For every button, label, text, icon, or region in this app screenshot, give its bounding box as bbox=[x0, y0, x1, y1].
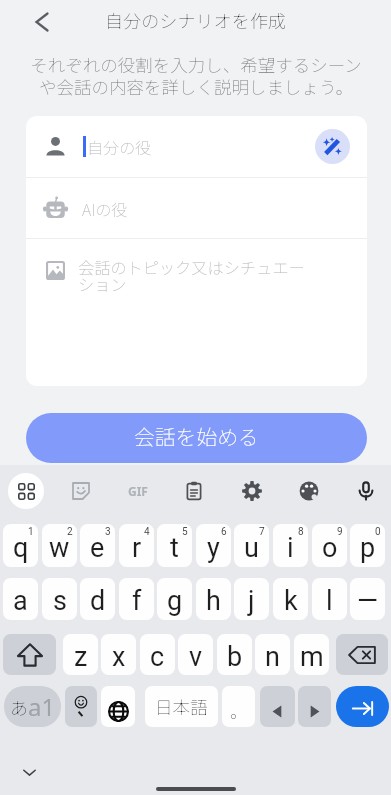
staticText: 日本語 bbox=[155, 694, 208, 719]
button[interactable]: y bbox=[196, 524, 231, 567]
staticText: 0 bbox=[375, 526, 381, 538]
staticText: t bbox=[170, 532, 179, 564]
button[interactable]: Shift bbox=[3, 634, 56, 675]
button[interactable]: t bbox=[157, 524, 192, 567]
staticText: s bbox=[53, 585, 67, 617]
button[interactable]: 会話のトピック又はシチュエーション bbox=[26, 239, 367, 386]
button[interactable]: p bbox=[350, 524, 385, 567]
button[interactable]: x bbox=[101, 634, 136, 675]
staticText: 6 bbox=[221, 526, 227, 538]
button[interactable]: b bbox=[217, 634, 252, 675]
staticText: 会話を始める bbox=[134, 421, 259, 451]
staticText: g bbox=[167, 585, 183, 617]
staticText: k bbox=[284, 585, 298, 617]
button[interactable]: Themes bbox=[291, 473, 327, 509]
button[interactable]: z bbox=[63, 634, 98, 675]
staticText: 会話のトピック又はシチュエーション bbox=[78, 255, 310, 296]
button[interactable]: Stickers bbox=[63, 473, 99, 509]
staticText: 自分の役 bbox=[87, 135, 152, 158]
staticText: n bbox=[265, 641, 280, 673]
button[interactable]: a bbox=[3, 578, 38, 620]
button[interactable]: n bbox=[255, 634, 290, 675]
staticText: l bbox=[326, 585, 333, 617]
button[interactable]: g bbox=[157, 578, 192, 620]
button[interactable]: Clipboard bbox=[176, 473, 212, 509]
staticText: y bbox=[207, 532, 220, 564]
button[interactable]: q bbox=[3, 524, 38, 567]
staticText: u bbox=[244, 532, 259, 564]
button[interactable]: Back bbox=[24, 4, 60, 40]
button[interactable]: v bbox=[178, 634, 213, 675]
button[interactable]: あ bbox=[4, 686, 61, 727]
staticText: d bbox=[90, 585, 106, 617]
button[interactable]: f bbox=[119, 578, 154, 620]
staticText: z bbox=[74, 641, 88, 673]
staticText: 1 bbox=[28, 526, 34, 538]
button[interactable]: Auto generate bbox=[315, 129, 350, 164]
staticText: 自分のシナリオを作成 bbox=[105, 7, 286, 33]
staticText: 2 bbox=[67, 526, 73, 538]
staticText: w bbox=[49, 532, 70, 564]
button[interactable]: 会話を始める bbox=[26, 413, 367, 463]
staticText: h bbox=[206, 585, 221, 617]
staticText: j bbox=[248, 585, 255, 617]
button[interactable]: o bbox=[312, 524, 347, 567]
button[interactable]: Voice input bbox=[348, 473, 384, 509]
staticText: 。 bbox=[230, 698, 247, 723]
button[interactable]: Enter bbox=[336, 686, 389, 727]
button[interactable]: Move cursor left bbox=[260, 686, 295, 727]
staticText: o bbox=[322, 532, 338, 564]
button[interactable]: GIF bbox=[120, 473, 156, 509]
staticText: e bbox=[90, 532, 105, 564]
staticText: a1 bbox=[28, 690, 56, 723]
staticText: x bbox=[112, 641, 126, 673]
button[interactable]: — bbox=[350, 578, 385, 620]
button[interactable]: 日本語 bbox=[145, 686, 218, 727]
button[interactable]: d bbox=[80, 578, 115, 620]
button[interactable]: Backspace bbox=[336, 634, 388, 675]
staticText: GIF bbox=[128, 483, 148, 499]
button[interactable]: w bbox=[42, 524, 77, 567]
button[interactable]: Apps bbox=[8, 473, 44, 509]
button[interactable]: e bbox=[80, 524, 115, 567]
staticText: a bbox=[13, 585, 28, 617]
staticText: それぞれの役割を入力し、希望するシーンや会話の内容を詳しく説明しましょう。 bbox=[26, 52, 366, 99]
button[interactable]: 自分の役 bbox=[26, 116, 367, 177]
button[interactable]: Hide keyboard bbox=[14, 757, 44, 787]
staticText: 4 bbox=[144, 526, 150, 538]
staticText: b bbox=[227, 641, 243, 673]
button[interactable]: Emoji bbox=[65, 686, 97, 727]
button[interactable]: 。 bbox=[222, 686, 255, 727]
staticText: r bbox=[132, 532, 142, 564]
staticText: — bbox=[357, 585, 379, 617]
button[interactable]: c bbox=[140, 634, 175, 675]
button[interactable]: r bbox=[119, 524, 154, 567]
button[interactable]: AIの役 bbox=[26, 178, 367, 238]
staticText: 7 bbox=[259, 526, 265, 538]
staticText: c bbox=[150, 641, 165, 673]
button[interactable]: Settings bbox=[234, 473, 270, 509]
staticText: AIの役 bbox=[82, 197, 128, 220]
button[interactable]: s bbox=[42, 578, 77, 620]
staticText: i bbox=[287, 532, 294, 564]
button[interactable]: Move cursor right bbox=[298, 686, 331, 727]
button[interactable]: i bbox=[273, 524, 308, 567]
staticText: 9 bbox=[337, 526, 343, 538]
staticText: 3 bbox=[105, 526, 111, 538]
button[interactable]: l bbox=[312, 578, 347, 620]
staticText: f bbox=[132, 585, 142, 617]
button[interactable]: k bbox=[273, 578, 308, 620]
staticText: あ bbox=[10, 694, 28, 720]
button[interactable]: j bbox=[234, 578, 269, 620]
button[interactable]: m bbox=[294, 634, 329, 675]
staticText: q bbox=[13, 532, 29, 564]
staticText: v bbox=[189, 641, 203, 673]
button[interactable]: u bbox=[234, 524, 269, 567]
button[interactable]: Change language bbox=[101, 686, 135, 727]
staticText: 5 bbox=[182, 526, 188, 538]
staticText: m bbox=[300, 641, 324, 673]
button[interactable]: h bbox=[196, 578, 231, 620]
staticText: 8 bbox=[298, 526, 304, 538]
staticText: p bbox=[360, 532, 376, 564]
